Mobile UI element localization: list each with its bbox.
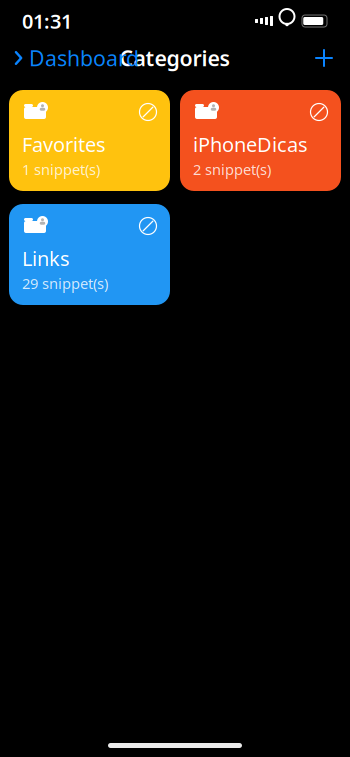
button[interactable]: Add category	[309, 43, 339, 73]
button[interactable]: iPhoneDicas	[180, 90, 341, 191]
staticText: 29 snippet(s)	[22, 273, 108, 293]
staticText: 1 snippet(s)	[22, 159, 100, 179]
staticText: iPhoneDicas	[193, 131, 308, 158]
staticText: Favorites	[22, 131, 106, 158]
staticText: Dashboard	[29, 44, 139, 72]
staticText: 01:31	[22, 8, 72, 34]
staticText: Categories	[119, 44, 230, 72]
button[interactable]: Links	[9, 204, 170, 305]
button[interactable]: Favorites	[9, 90, 170, 191]
button[interactable]: Dashboard	[11, 38, 141, 78]
staticText: 2 snippet(s)	[193, 159, 271, 179]
staticText: Links	[22, 245, 70, 272]
